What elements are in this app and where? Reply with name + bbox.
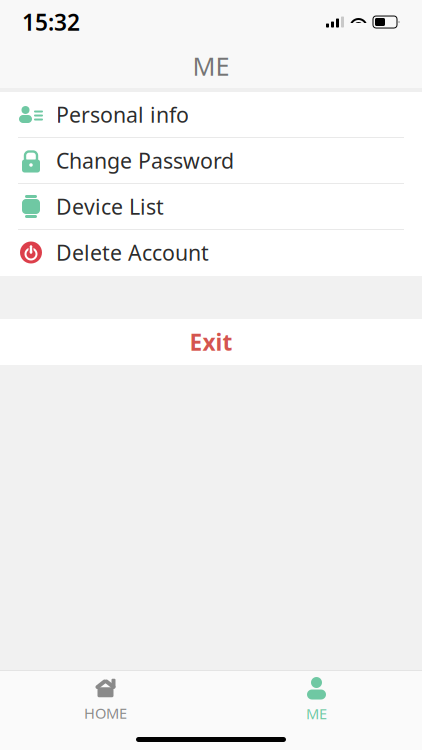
button[interactable]: HOME [0, 669, 211, 723]
staticText: Change Password [56, 146, 234, 175]
staticText: Delete Account [56, 238, 209, 267]
staticText: Personal info [56, 100, 189, 129]
staticText: Exit [189, 327, 232, 357]
button[interactable]: Delete Account [0, 230, 422, 276]
button[interactable]: ME [211, 669, 422, 723]
button[interactable]: Change Password [0, 138, 422, 184]
staticText: Device List [56, 192, 164, 221]
button[interactable]: Exit [0, 319, 422, 365]
staticText: ME [192, 49, 229, 83]
staticText: ME [306, 704, 327, 723]
staticText: 15:32 [22, 7, 80, 37]
button[interactable]: Device List [0, 184, 422, 230]
button[interactable]: Personal info [0, 92, 422, 138]
staticText: HOME [84, 703, 127, 723]
